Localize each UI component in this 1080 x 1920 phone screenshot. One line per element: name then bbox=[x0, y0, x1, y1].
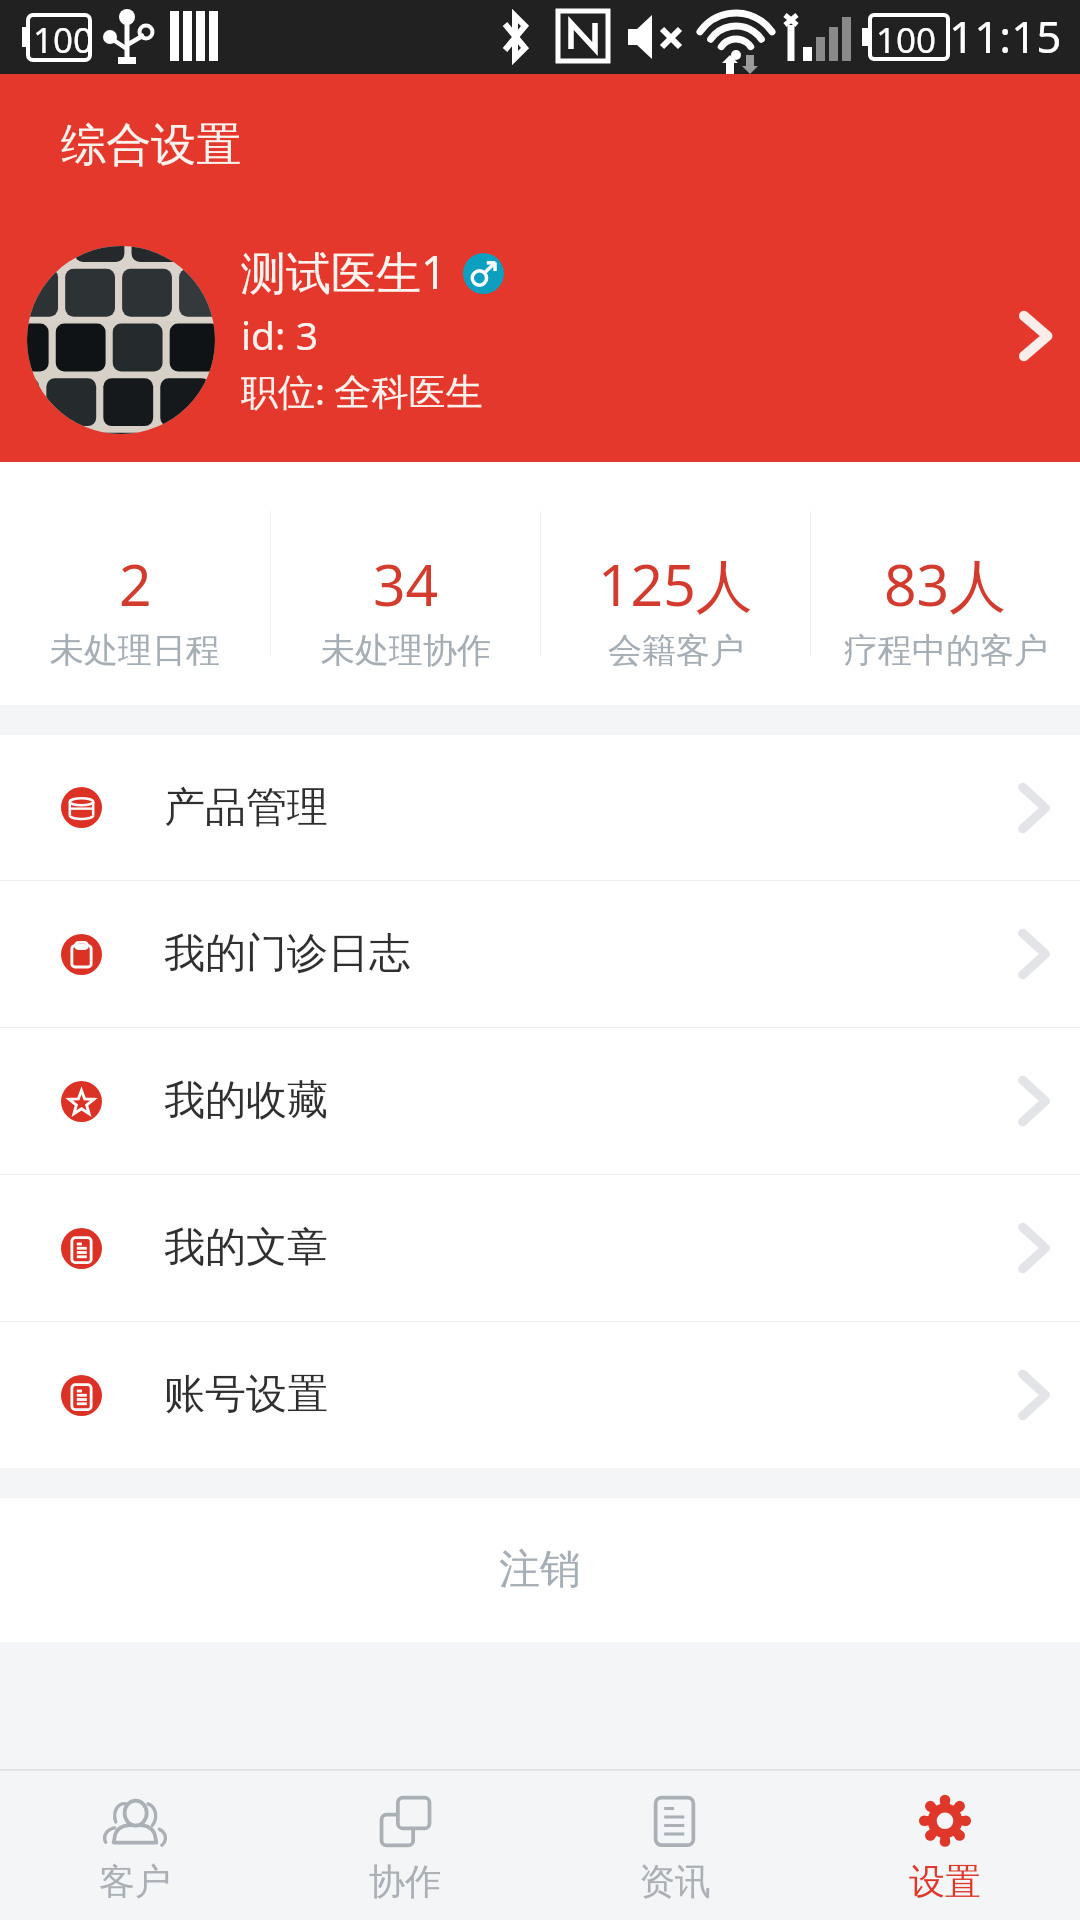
staticText: 疗程中的客户 bbox=[844, 629, 1048, 672]
button[interactable]: 83人 bbox=[811, 462, 1080, 705]
button[interactable]: 我的门诊日志 bbox=[0, 881, 1080, 1028]
button[interactable]: 产品管理 bbox=[0, 735, 1080, 881]
button[interactable]: 客户 bbox=[0, 1771, 270, 1920]
staticText: 11:15 bbox=[949, 6, 1062, 66]
staticText: 我的门诊日志 bbox=[164, 928, 410, 980]
staticText: 我的收藏 bbox=[164, 1075, 328, 1127]
staticText: 未处理日程 bbox=[50, 629, 220, 672]
staticText: 未处理协作 bbox=[321, 629, 491, 672]
staticText: 100 bbox=[876, 16, 937, 64]
button[interactable]: 注销 bbox=[0, 1498, 1080, 1642]
staticText: 34 bbox=[373, 545, 439, 623]
staticText: 协作 bbox=[369, 1859, 441, 1904]
staticText: id: 3 bbox=[241, 308, 318, 361]
staticText: 设置 bbox=[909, 1859, 981, 1904]
staticText: 测试医生1 bbox=[241, 241, 447, 302]
button[interactable]: 我的文章 bbox=[0, 1175, 1080, 1322]
button[interactable]: 我的收藏 bbox=[0, 1028, 1080, 1175]
staticText: 125人 bbox=[598, 545, 753, 623]
staticText: 我的文章 bbox=[164, 1222, 328, 1274]
staticText: 客户 bbox=[99, 1859, 171, 1904]
staticText: 会籍客户 bbox=[608, 629, 744, 672]
staticText: 2 bbox=[119, 545, 152, 623]
button[interactable]: 设置 bbox=[810, 1771, 1080, 1920]
button[interactable]: 账号设置 bbox=[0, 1322, 1080, 1468]
button[interactable]: 资讯 bbox=[540, 1771, 810, 1920]
button[interactable]: 34 bbox=[271, 462, 540, 705]
staticText: 注销 bbox=[499, 1544, 581, 1596]
staticText: 账号设置 bbox=[164, 1369, 328, 1421]
button[interactable]: 协作 bbox=[270, 1771, 540, 1920]
button[interactable]: 125人 bbox=[541, 462, 810, 705]
staticText: 职位: 全科医生 bbox=[241, 365, 483, 416]
staticText: 83人 bbox=[884, 545, 1007, 623]
staticText: 资讯 bbox=[639, 1859, 711, 1904]
button[interactable]: 2 bbox=[0, 462, 270, 705]
staticText: 综合设置 bbox=[61, 117, 241, 174]
button[interactable]: 测试医生1 bbox=[0, 218, 1080, 462]
staticText: 产品管理 bbox=[164, 782, 328, 834]
staticText: 100 bbox=[33, 16, 94, 64]
other: 查看个人资料 bbox=[992, 294, 1076, 378]
